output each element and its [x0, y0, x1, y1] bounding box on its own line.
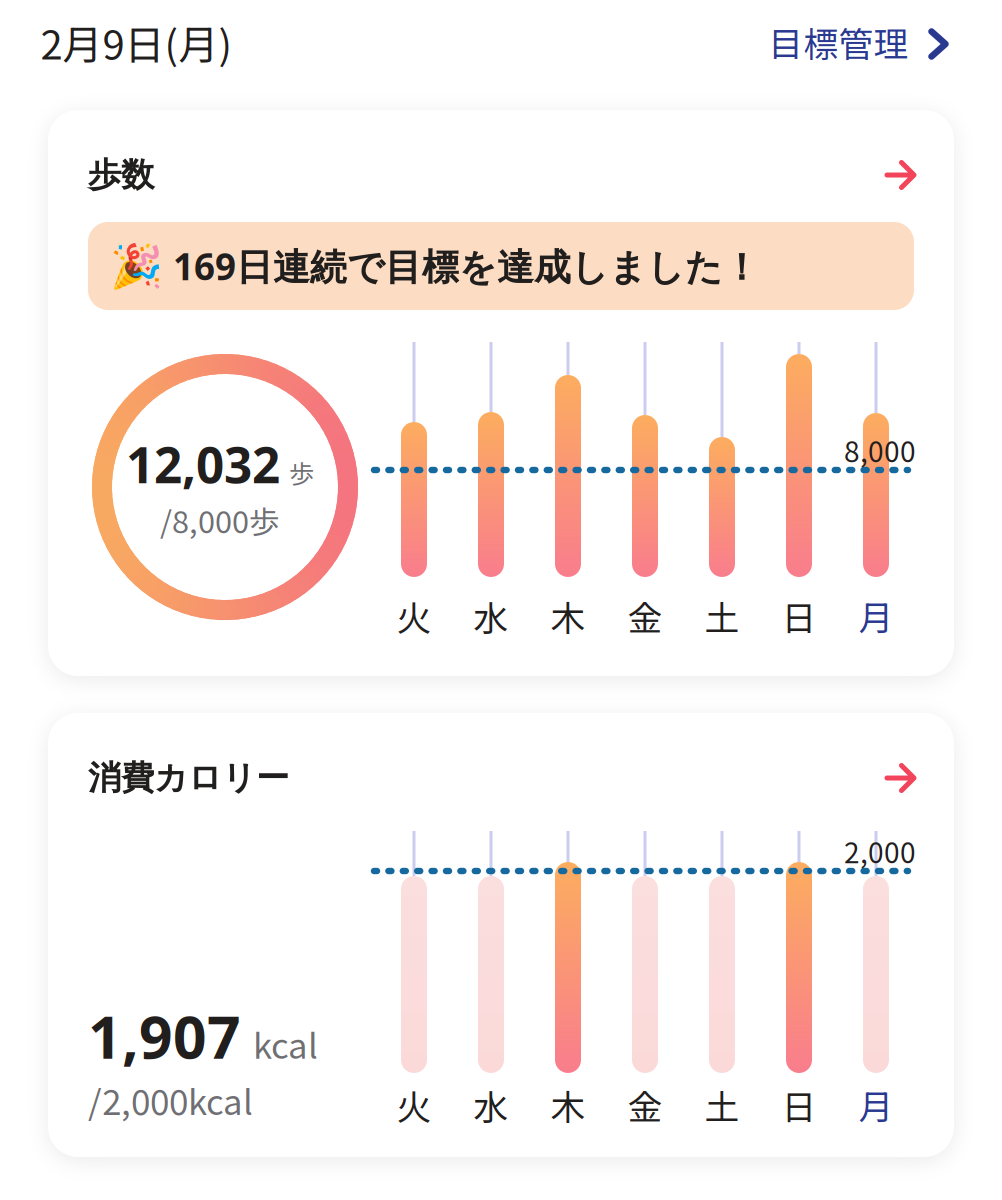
- staticText: 木: [550, 1080, 585, 1130]
- staticText: kcal: [253, 1018, 318, 1069]
- staticText: 火: [396, 1080, 431, 1130]
- staticText: 169日連続で目標を達成しました！: [173, 241, 760, 291]
- staticText: 月: [858, 591, 893, 641]
- staticText: 12,032: [126, 430, 280, 498]
- staticText: 金: [627, 591, 662, 641]
- button[interactable]: 歩数: [88, 153, 914, 197]
- button[interactable]: 消費カロリー: [88, 756, 914, 800]
- staticText: 歩数: [88, 154, 154, 196]
- staticText: 2,000: [844, 831, 916, 871]
- staticText: 火: [396, 591, 431, 641]
- staticText: 土: [704, 591, 739, 641]
- staticText: 木: [550, 591, 585, 641]
- staticText: 水: [473, 1080, 508, 1130]
- staticText: 1,907: [88, 996, 241, 1076]
- staticText: /8,000歩: [160, 498, 280, 542]
- staticText: 日: [781, 591, 816, 641]
- button[interactable]: 目標管理: [768, 11, 945, 73]
- staticText: 消費カロリー: [88, 757, 289, 799]
- staticText: 2月9日(月): [40, 13, 232, 71]
- staticText: 目標管理: [768, 17, 908, 67]
- staticText: 金: [627, 1080, 662, 1130]
- staticText: /2,000kcal: [88, 1075, 253, 1125]
- staticText: 🎉: [110, 241, 163, 291]
- staticText: 歩: [289, 454, 314, 490]
- staticText: 土: [704, 1080, 739, 1130]
- staticText: 月: [858, 1080, 893, 1130]
- staticText: 日: [781, 1080, 816, 1130]
- staticText: 8,000: [844, 430, 916, 470]
- staticText: 水: [473, 591, 508, 641]
